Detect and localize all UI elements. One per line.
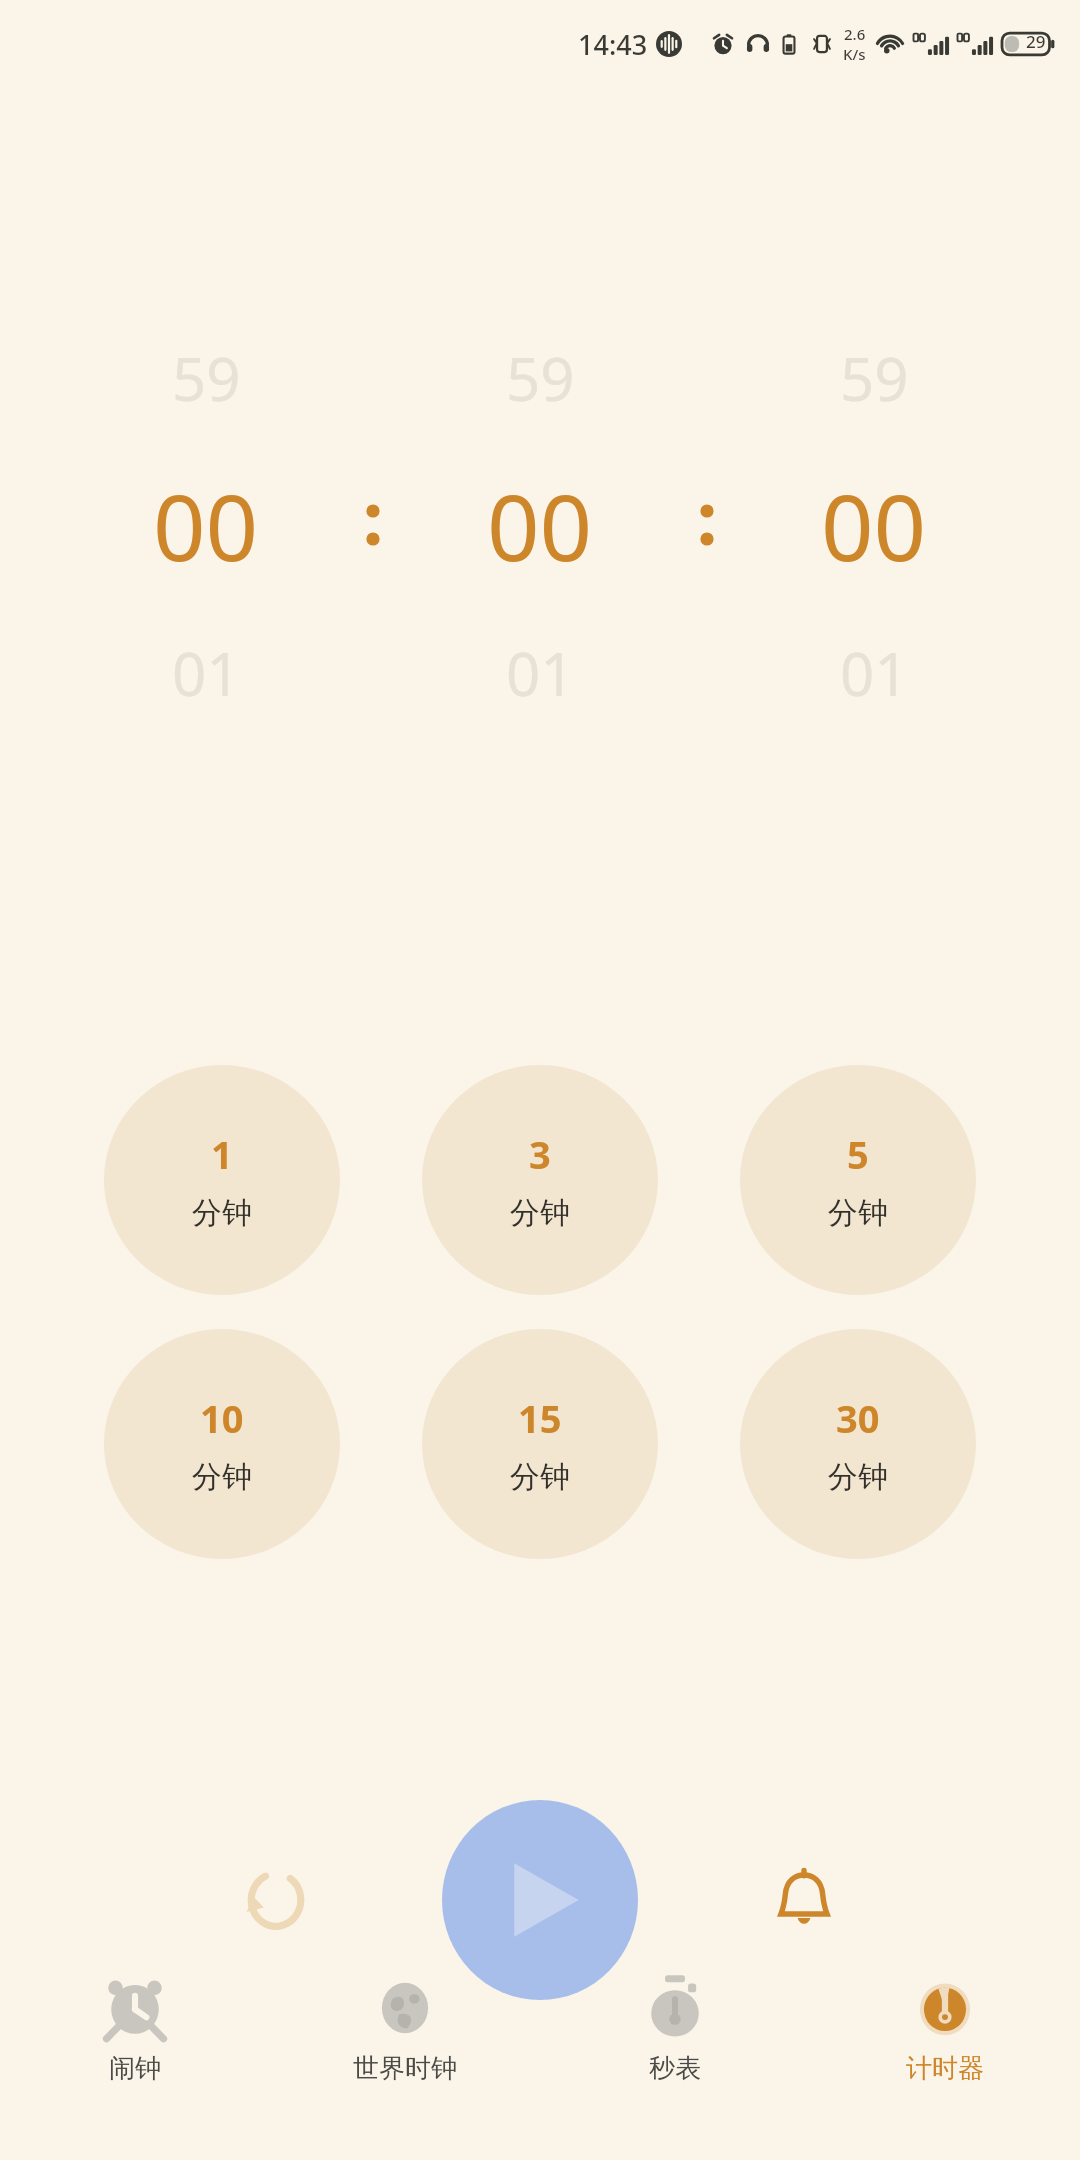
staticText: 01 (172, 632, 241, 714)
button[interactable]: 计时器 (810, 1960, 1080, 2132)
staticText: 15 (518, 1392, 562, 1444)
staticText: 分钟 (510, 1458, 570, 1496)
staticText: 分钟 (192, 1194, 252, 1232)
staticText: 59 (506, 337, 575, 419)
staticText: 14:43 (578, 26, 648, 63)
staticText: 计时器 (906, 2052, 984, 2085)
staticText: K/s (843, 44, 866, 64)
button[interactable]: Ringtone (758, 1854, 850, 1946)
staticText: 01 (840, 632, 909, 714)
staticText: 59 (172, 337, 241, 419)
button[interactable]: 15 (422, 1329, 658, 1559)
staticText: 01 (506, 632, 575, 714)
staticText: 分钟 (828, 1458, 888, 1496)
button[interactable]: 30 (740, 1329, 976, 1559)
staticText: 10 (200, 1392, 244, 1444)
button[interactable]: Start (442, 1800, 638, 2000)
staticText: 00 (821, 463, 927, 588)
button[interactable]: 59 (60, 337, 352, 714)
staticText: 分钟 (828, 1194, 888, 1232)
staticText: 3 (529, 1128, 551, 1180)
button[interactable]: Reset (230, 1854, 322, 1946)
button[interactable]: 10 (104, 1329, 340, 1559)
button[interactable]: 秒表 (540, 1960, 810, 2132)
staticText: 世界时钟 (353, 2052, 457, 2085)
staticText: 1 (211, 1128, 233, 1180)
staticText: 00 (153, 463, 259, 588)
staticText: 5 (847, 1128, 869, 1180)
button[interactable]: 3 (422, 1065, 658, 1295)
button[interactable]: 1 (104, 1065, 340, 1295)
button[interactable]: 5 (740, 1065, 976, 1295)
staticText: 29 (1026, 30, 1046, 53)
staticText: 2.6 (844, 24, 866, 44)
button[interactable]: 59 (728, 337, 1020, 714)
staticText: 分钟 (510, 1194, 570, 1232)
button[interactable]: 世界时钟 (270, 1960, 540, 2132)
staticText: 30 (836, 1392, 880, 1444)
staticText: 分钟 (192, 1458, 252, 1496)
staticText: 59 (840, 337, 909, 419)
button[interactable]: 闹钟 (0, 1960, 270, 2132)
button[interactable]: 59 (394, 337, 686, 714)
staticText: 闹钟 (109, 2052, 161, 2085)
staticText: 00 (487, 463, 593, 588)
staticText: 秒表 (649, 2052, 701, 2085)
